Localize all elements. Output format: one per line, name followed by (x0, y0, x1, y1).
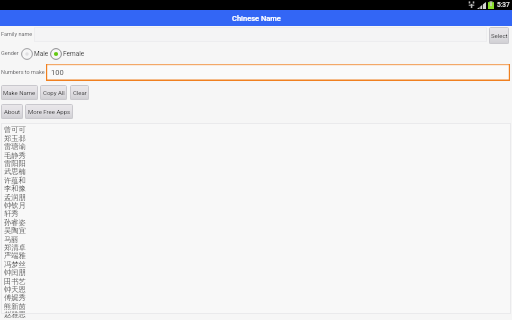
staticText: About (4, 108, 20, 115)
button[interactable]: More Free Apps (25, 104, 73, 119)
staticText: More Free Apps (28, 108, 71, 115)
staticText: 武思楠 (4, 167, 26, 176)
button[interactable]: 郑清卓 (4, 243, 512, 252)
staticText: Make Name (3, 89, 36, 96)
button[interactable]: 傅娓秀 (4, 293, 512, 302)
button[interactable]: 钟闰朋 (4, 268, 512, 277)
button[interactable]: 赵雅思 (4, 310, 512, 319)
button[interactable]: 孟润朋 (4, 193, 512, 202)
staticText: 马丽 (4, 235, 19, 244)
staticText: Copy All (43, 89, 65, 96)
staticText: Select (491, 32, 508, 39)
staticText: 李和豫 (4, 184, 26, 193)
staticText: Male (34, 50, 49, 58)
staticText: 毛静秀 (4, 151, 26, 160)
button[interactable]: Select (489, 27, 509, 44)
staticText: 郑玉邶 (4, 134, 26, 143)
staticText: 郑清卓 (4, 243, 26, 252)
button[interactable]: 钟天恩 (4, 285, 512, 294)
button[interactable]: Female (50, 48, 85, 60)
button[interactable]: About (1, 104, 23, 119)
staticText: 5:37 (497, 1, 510, 9)
staticText: 赵雅思 (4, 310, 26, 319)
button[interactable]: 孙睿姿 (4, 218, 512, 227)
staticText: 曾可可 (4, 125, 26, 134)
staticText: 田书艺 (4, 277, 26, 286)
button[interactable]: 许蕴和 (4, 176, 512, 185)
staticText: Numbers to make (1, 69, 45, 75)
button[interactable]: 雷阳阳 (4, 159, 512, 168)
staticText: 100 (51, 68, 64, 77)
other: USB connected (468, 1, 475, 9)
staticText: Female (63, 50, 85, 58)
button[interactable]: 钟钦月 (4, 201, 512, 210)
button[interactable]: 田书艺 (4, 277, 512, 286)
button[interactable]: 毛静秀 (4, 151, 512, 160)
staticText: 钟闰朋 (4, 268, 26, 277)
staticText: 雷阳阳 (4, 159, 26, 168)
button[interactable]: 100 (46, 64, 510, 81)
staticText: 孟润朋 (4, 193, 26, 202)
button[interactable]: 武思楠 (4, 167, 512, 176)
staticText: 吴陶宜 (4, 226, 26, 235)
button[interactable]: 熊新茵 (4, 302, 512, 311)
staticText: 轩秀 (4, 209, 19, 218)
button[interactable]: 李和豫 (4, 184, 512, 193)
button[interactable]: 轩秀 (4, 209, 512, 218)
staticText: Chinese Name (232, 14, 281, 23)
staticText: Gender (1, 50, 19, 56)
staticText: 严端雅 (4, 251, 26, 260)
button[interactable]: 雷瑭谕 (4, 142, 512, 151)
button[interactable]: 吴陶宜 (4, 226, 512, 235)
button[interactable]: 曾可可 (4, 125, 512, 134)
button[interactable]: Make Name (1, 85, 38, 100)
staticText: 雷瑭谕 (4, 142, 26, 151)
staticText: 钟天恩 (4, 285, 26, 294)
staticText: 钟钦月 (4, 201, 26, 210)
button[interactable]: Clear (70, 85, 89, 100)
button[interactable]: Copy All (40, 85, 67, 100)
other: Battery (488, 1, 494, 9)
button[interactable]: 马丽 (4, 235, 512, 244)
staticText: 许蕴和 (4, 176, 26, 185)
staticText: Family name (1, 31, 33, 37)
staticText: 冯梦丝 (4, 260, 26, 269)
button[interactable]: 严端雅 (4, 251, 512, 260)
button[interactable]: 冯梦丝 (4, 260, 512, 269)
staticText: 傅娓秀 (4, 293, 26, 302)
staticText: Clear (73, 89, 87, 96)
staticText: 熊新茵 (4, 302, 26, 311)
button[interactable]: 郑玉邶 (4, 134, 512, 143)
staticText: 孙睿姿 (4, 218, 26, 227)
button[interactable]: Male (21, 48, 49, 60)
other: Signal strength (477, 2, 486, 9)
